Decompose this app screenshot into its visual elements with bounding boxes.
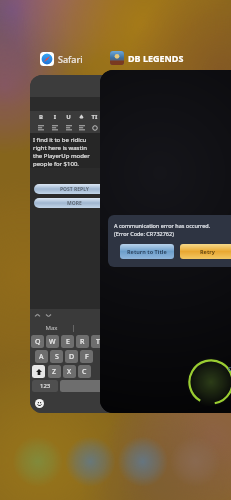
button[interactable]: pla: [30, 75, 118, 413]
staticText: Retry: [200, 248, 215, 255]
staticText: Q: [35, 337, 41, 347]
staticText: MORE: [67, 200, 82, 207]
staticText: Max: [30, 324, 73, 332]
staticText: POST REPLY: [60, 186, 89, 193]
staticText: X: [67, 367, 72, 377]
button[interactable]: C: [78, 365, 91, 378]
staticText: Conne: [228, 366, 231, 373]
staticText: DB LEGENDS: [128, 52, 184, 64]
staticText: E: [66, 337, 70, 347]
button[interactable]: A: [35, 350, 48, 363]
button[interactable]: Z: [48, 365, 61, 378]
button[interactable]: Retry: [180, 244, 231, 259]
staticText: Z: [52, 367, 57, 377]
button[interactable]: Conne: [100, 70, 231, 413]
staticText: T: [96, 337, 100, 347]
button[interactable]: X: [63, 365, 76, 378]
button[interactable]: Space: [60, 380, 116, 392]
staticText: R: [80, 337, 85, 347]
button[interactable]: POST REPLY: [34, 184, 114, 194]
button[interactable]: Shift: [32, 365, 45, 378]
button[interactable]: Safari: [40, 52, 83, 66]
staticText: Return to Title: [127, 248, 167, 255]
staticText: people for $100.: [33, 160, 79, 168]
button[interactable]: F: [80, 350, 93, 363]
staticText: A: [39, 352, 44, 362]
staticText: I find it to be ridicu: [33, 136, 87, 144]
staticText: Safari: [58, 53, 83, 65]
button[interactable]: Emoji: [35, 399, 44, 408]
button[interactable]: T: [91, 335, 104, 348]
staticText: C: [82, 367, 87, 377]
button[interactable]: 123: [32, 380, 58, 392]
button[interactable]: DB LEGENDS: [110, 51, 184, 65]
staticText: S: [55, 352, 59, 362]
button[interactable]: W: [46, 335, 59, 348]
staticText: A communication error has occurred.: [114, 222, 211, 229]
button[interactable]: Return to Title: [120, 244, 174, 259]
staticText: W: [49, 337, 56, 347]
button[interactable]: Q: [31, 335, 44, 348]
staticText: right here is wastin: [33, 144, 87, 152]
button[interactable]: E: [61, 335, 74, 348]
staticText: 123: [40, 382, 51, 390]
staticText: I: [48, 113, 62, 121]
button[interactable]: R: [76, 335, 89, 348]
staticText: B: [34, 113, 48, 121]
button[interactable]: S: [50, 350, 63, 363]
staticText: U: [62, 113, 75, 121]
staticText: ♠: [75, 113, 88, 120]
staticText: (Error Code: CR732762): [114, 230, 174, 237]
staticText: TI: [88, 113, 101, 121]
button[interactable]: MORE: [34, 198, 114, 208]
staticText: D: [69, 352, 75, 362]
staticText: F: [85, 352, 89, 362]
staticText: the PlayerUp moder: [33, 152, 90, 160]
button[interactable]: D: [65, 350, 78, 363]
